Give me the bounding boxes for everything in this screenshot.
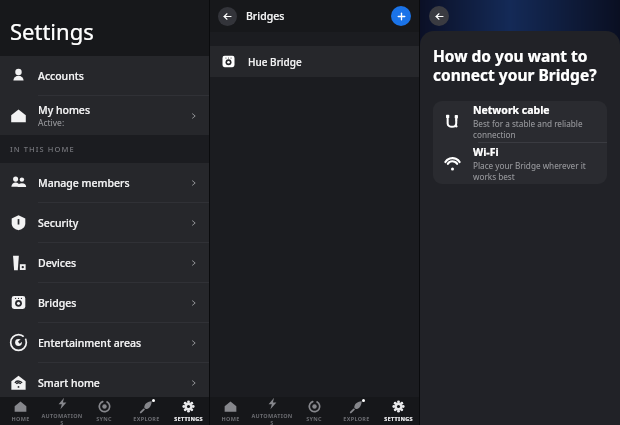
staticText: Bridges — [246, 9, 285, 23]
button[interactable]: Devices — [0, 243, 209, 282]
button[interactable]: Network cable — [433, 101, 607, 142]
staticText: IN THIS HOME — [10, 144, 75, 154]
button[interactable]: HOME — [0, 397, 41, 425]
staticText: HOME — [11, 415, 30, 422]
staticText: SYNC — [96, 415, 112, 422]
staticText: Wi-Fi — [473, 145, 499, 159]
staticText: AUTOMATIONS — [41, 412, 83, 425]
button[interactable]: Entertainment areas — [0, 323, 209, 362]
staticText: Best for a stable and reliable connectio… — [473, 118, 596, 140]
button[interactable]: EXPLORE — [335, 397, 377, 425]
button[interactable]: Bridges — [0, 283, 209, 322]
staticText: SETTINGS — [384, 415, 413, 422]
staticText: Entertainment areas — [38, 336, 142, 350]
staticText: My homes — [38, 103, 90, 117]
staticText: HOME — [221, 415, 240, 422]
staticText: AUTOMATIONS — [251, 412, 293, 425]
button[interactable]: Back — [218, 7, 237, 26]
staticText: Accounts — [38, 69, 84, 83]
staticText: Manage members — [38, 176, 130, 190]
staticText: Place your Bridge wherever it works best — [473, 160, 596, 182]
staticText: SETTINGS — [174, 415, 203, 422]
staticText: SYNC — [306, 415, 322, 422]
staticText: How do you want to connect your Bridge? — [433, 45, 597, 85]
staticText: Active: — [38, 117, 65, 129]
staticText: Bridges — [38, 296, 77, 310]
staticText: Security — [38, 216, 79, 230]
staticText: Smart home — [38, 376, 100, 390]
button[interactable]: Wi-Fi — [433, 143, 607, 184]
button[interactable]: Accounts — [0, 56, 209, 95]
staticText: Devices — [38, 256, 77, 270]
button[interactable]: Manage members — [0, 163, 209, 202]
button[interactable]: AUTOMATIONS — [41, 397, 83, 425]
staticText: Hue Bridge — [248, 55, 302, 69]
button[interactable]: SETTINGS — [167, 397, 209, 425]
button[interactable]: Back — [429, 6, 449, 26]
button[interactable]: Security — [0, 203, 209, 242]
button[interactable]: My homes — [0, 96, 209, 135]
button[interactable]: SYNC — [293, 397, 335, 425]
button[interactable]: EXPLORE — [125, 397, 167, 425]
staticText: EXPLORE — [343, 415, 370, 422]
staticText: Settings — [10, 16, 94, 46]
button[interactable]: AUTOMATIONS — [251, 397, 293, 425]
button[interactable]: Smart home — [0, 363, 209, 402]
button[interactable]: Hue Bridge — [210, 46, 419, 77]
button[interactable]: SETTINGS — [377, 397, 419, 425]
staticText: Network cable — [473, 103, 550, 117]
button[interactable]: HOME — [210, 397, 251, 425]
button[interactable]: Add bridge — [391, 6, 411, 26]
button[interactable]: SYNC — [83, 397, 125, 425]
staticText: EXPLORE — [133, 415, 160, 422]
